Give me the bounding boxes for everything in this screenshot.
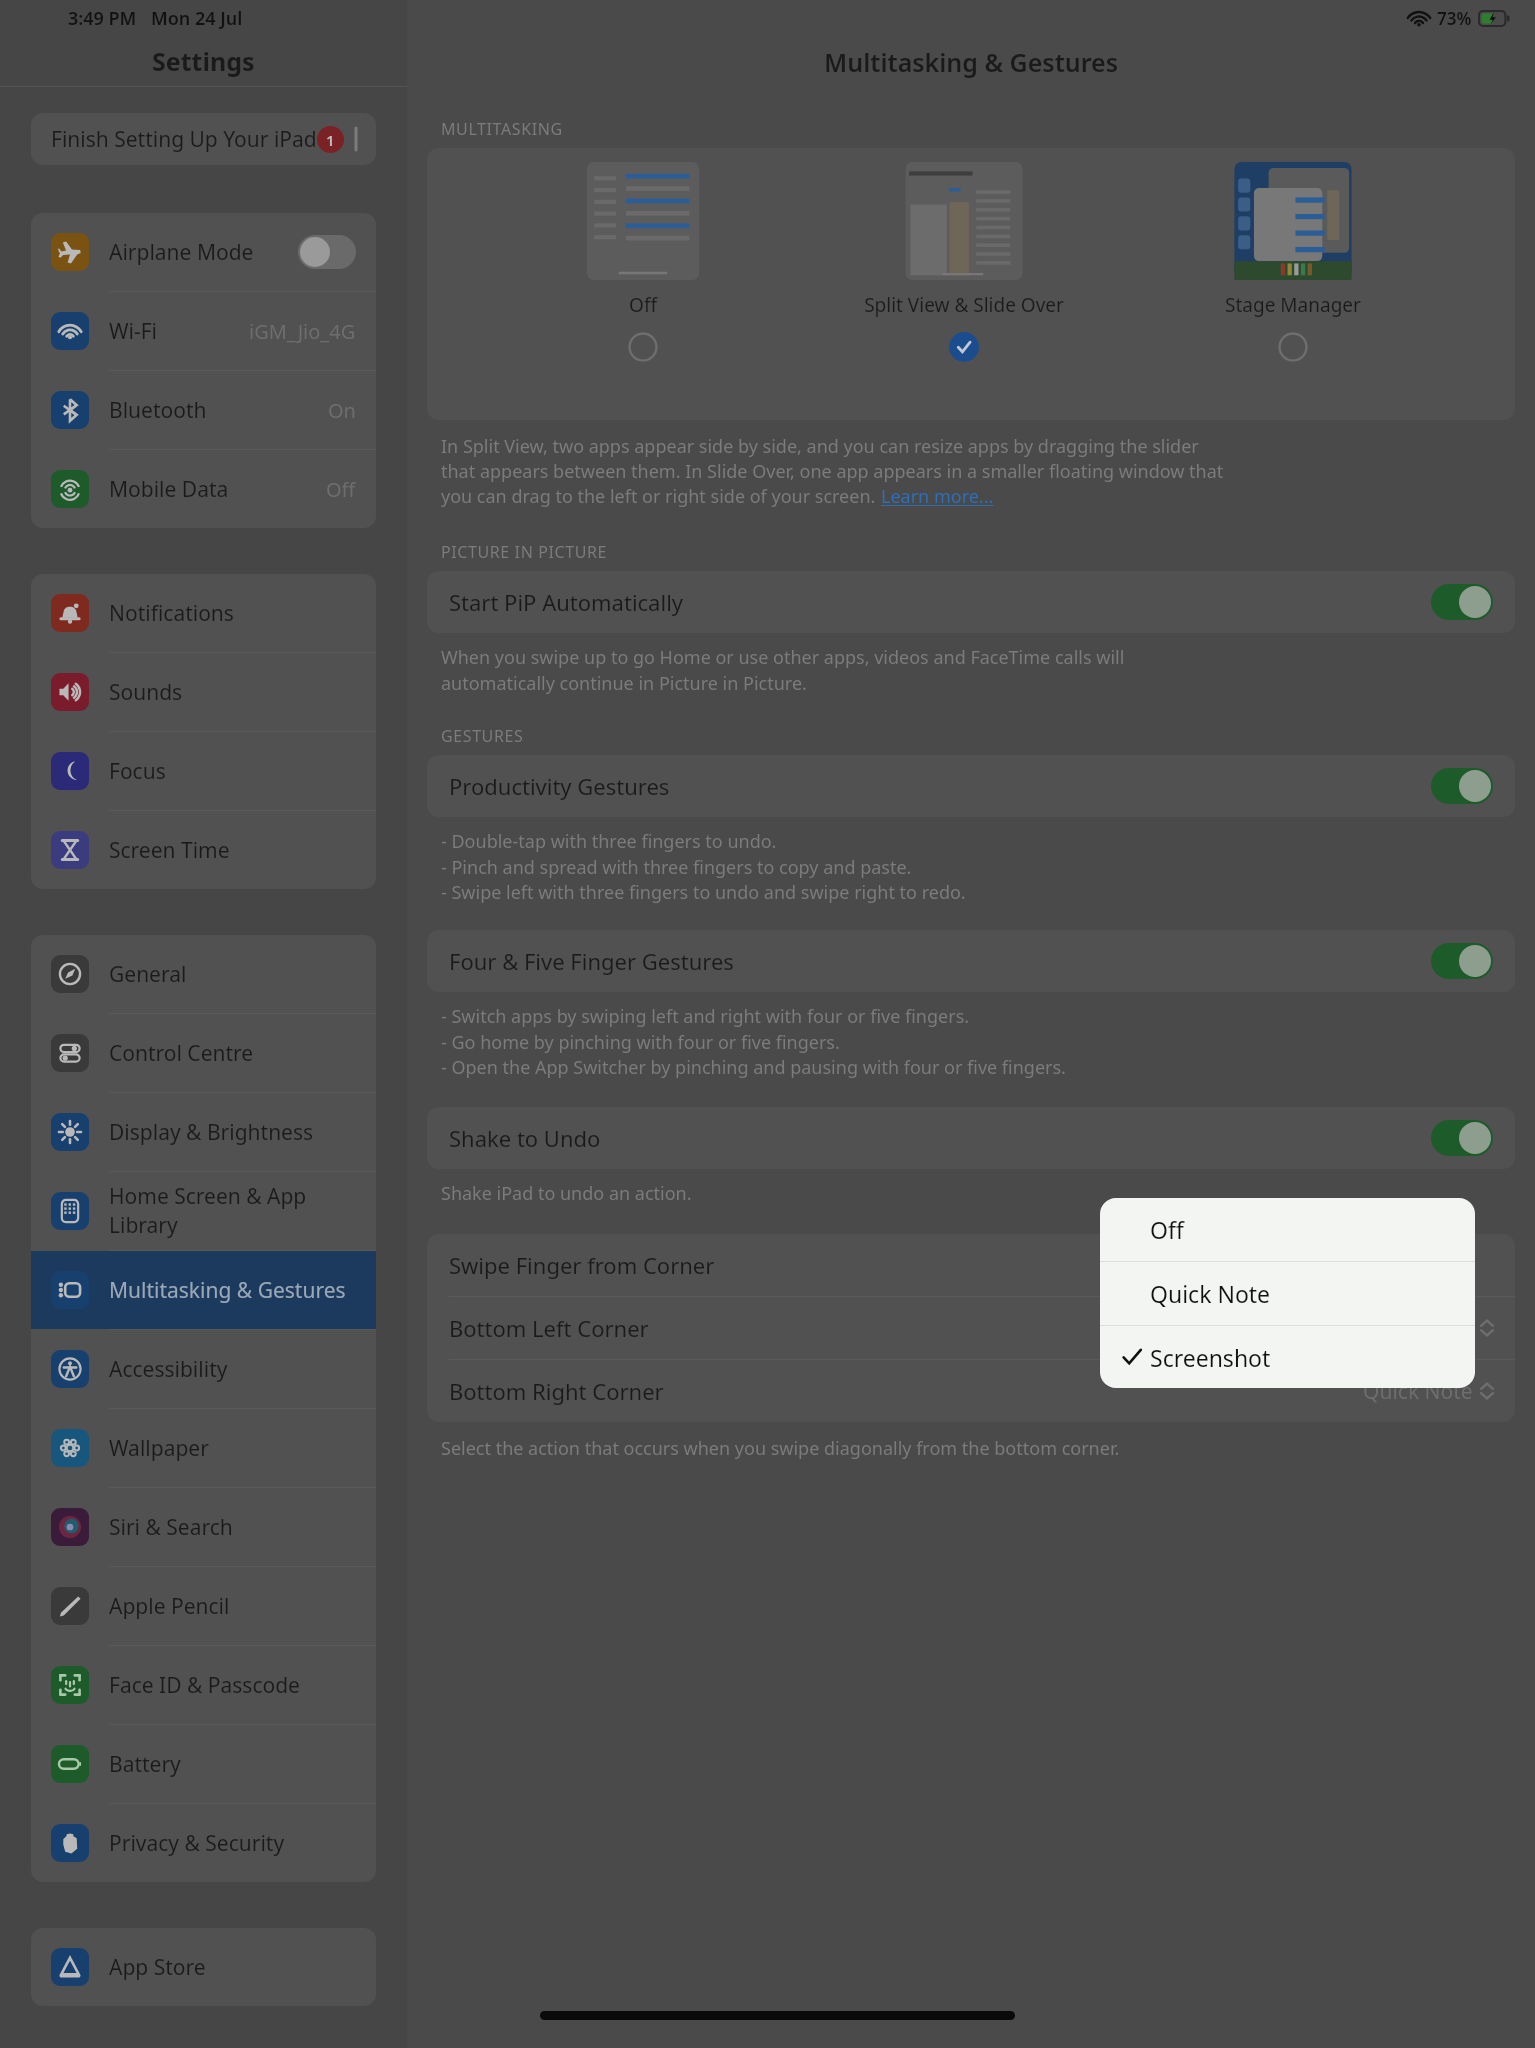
staticText: Control Centre (109, 1039, 254, 1068)
button[interactable]: Off (576, 162, 710, 362)
button[interactable]: Start PiP Automatically (427, 571, 1515, 633)
staticText: Off (1150, 1214, 1184, 1245)
button[interactable]: Accessibility (31, 1330, 376, 1408)
staticText: Privacy & Security (109, 1829, 285, 1858)
button[interactable]: Split View & Slide Over (858, 162, 1070, 362)
button[interactable]: Privacy & Security (31, 1804, 376, 1882)
staticText: Home Screen & App Library (109, 1182, 356, 1240)
button[interactable]: Productivity Gestures toggle (1431, 768, 1493, 804)
button[interactable]: Four & Five Finger Gestures toggle (1431, 943, 1493, 979)
staticText: 3:49 PM (68, 6, 137, 31)
button[interactable]: Shake to Undo toggle (1431, 1120, 1493, 1156)
staticText: Productivity Gestures (449, 771, 670, 801)
staticText: Off (629, 292, 657, 318)
button[interactable]: Screen Time (31, 811, 376, 889)
staticText: Swipe Finger from Corner (449, 1250, 715, 1280)
button[interactable]: Focus (31, 732, 376, 810)
button[interactable]: Airplane Mode toggle (298, 235, 356, 269)
staticText: Multitasking & Gestures (109, 1276, 346, 1305)
staticText: Wi-Fi (109, 317, 158, 346)
staticText: Battery (109, 1750, 181, 1779)
button[interactable]: App Store (31, 1928, 376, 2006)
staticText: Screenshot (1363, 1314, 1473, 1343)
button[interactable]: Apple Pencil (31, 1567, 376, 1645)
button[interactable]: Swipe Finger from Corner (427, 1234, 1515, 1296)
staticText: Start PiP Automatically (449, 587, 684, 617)
button[interactable]: Four & Five Finger Gestures (427, 930, 1515, 992)
staticText: iGM_Jio_4G (249, 318, 356, 345)
staticText: Select the action that occurs when you s… (441, 1436, 1120, 1461)
staticText: - Double-tap with three fingers to undo.… (441, 829, 966, 904)
staticText: Learn more... (881, 484, 994, 509)
button[interactable]: Home Screen & App Library (31, 1172, 376, 1250)
button[interactable]: Bluetooth (31, 371, 376, 449)
button[interactable]: Shake to Undo (427, 1107, 1515, 1169)
staticText: Focus (109, 757, 166, 786)
staticText: Quick Note (1150, 1278, 1271, 1309)
staticText: GESTURES (441, 725, 524, 747)
staticText: MULTITASKING (441, 118, 563, 140)
button[interactable]: Siri & Search (31, 1488, 376, 1566)
button[interactable]: Multitasking & Gestures (31, 1251, 376, 1329)
staticText: Four & Five Finger Gestures (449, 946, 734, 976)
staticText: Face ID & Passcode (109, 1671, 300, 1700)
staticText: Multitasking & Gestures (824, 45, 1119, 79)
staticText: Display & Brightness (109, 1118, 314, 1147)
staticText: Airplane Mode (109, 238, 254, 267)
staticText: Stage Manager (1225, 292, 1361, 318)
button[interactable]: General (31, 935, 376, 1013)
button[interactable]: Display & Brightness (31, 1093, 376, 1171)
staticText: Split View & Slide Over (864, 292, 1064, 318)
staticText: PICTURE IN PICTURE (441, 541, 608, 563)
button[interactable]: Productivity Gestures (427, 755, 1515, 817)
button[interactable]: Wi-Fi (31, 292, 376, 370)
staticText: Screenshot (1150, 1342, 1271, 1373)
button[interactable]: Battery (31, 1725, 376, 1803)
staticText: Notifications (109, 599, 234, 628)
button[interactable]: Control Centre (31, 1014, 376, 1092)
button[interactable]: Screenshot (1100, 1326, 1475, 1388)
staticText: that appears between them. In Slide Over… (441, 459, 1224, 484)
staticText: General (109, 960, 187, 989)
staticText: Shake iPad to undo an action. (441, 1181, 692, 1206)
staticText: Bottom Right Corner (449, 1376, 664, 1406)
button[interactable]: Airplane Mode (31, 213, 376, 291)
staticText: Accessibility (109, 1355, 228, 1384)
staticText: On (328, 397, 356, 424)
staticText: Bottom Left Corner (449, 1313, 649, 1343)
staticText: Screen Time (109, 836, 230, 865)
staticText: Mon 24 Jul (151, 6, 243, 31)
staticText: Wallpaper (109, 1434, 209, 1463)
staticText: In Split View, two apps appear side by s… (441, 434, 1199, 459)
staticText: Siri & Search (109, 1513, 233, 1542)
staticText: - Switch apps by swiping left and right … (441, 1004, 1066, 1079)
button[interactable]: Face ID & Passcode (31, 1646, 376, 1724)
button[interactable]: Finish Setting Up Your iPad (31, 113, 376, 165)
button[interactable]: Mobile Data (31, 450, 376, 528)
button[interactable]: Bottom Left Corner (427, 1297, 1515, 1359)
staticText: 73% (1437, 7, 1472, 30)
staticText: Settings (152, 44, 255, 78)
staticText: Shake to Undo (449, 1123, 601, 1153)
staticText: Mobile Data (109, 475, 229, 504)
staticText: Off (326, 476, 356, 503)
staticText: Apple Pencil (109, 1592, 230, 1621)
button[interactable]: Bottom Right Corner (427, 1360, 1515, 1422)
button[interactable]: Quick Note (1100, 1262, 1475, 1325)
button[interactable]: Sounds (31, 653, 376, 731)
staticText: Bluetooth (109, 396, 207, 425)
button[interactable]: Off (1100, 1198, 1475, 1261)
staticText: 1 (326, 130, 335, 150)
button[interactable]: Notifications (31, 574, 376, 652)
staticText: Finish Setting Up Your iPad (51, 125, 317, 154)
staticText: App Store (109, 1953, 206, 1982)
button[interactable]: Start PiP Automatically toggle (1431, 584, 1493, 620)
staticText: When you swipe up to go Home or use othe… (441, 645, 1125, 695)
button[interactable]: Stage Manager (1219, 162, 1367, 362)
staticText: Quick Note (1363, 1377, 1473, 1406)
button[interactable]: Wallpaper (31, 1409, 376, 1487)
staticText: Sounds (109, 678, 183, 707)
staticText: you can drag to the left or right side o… (441, 484, 881, 509)
